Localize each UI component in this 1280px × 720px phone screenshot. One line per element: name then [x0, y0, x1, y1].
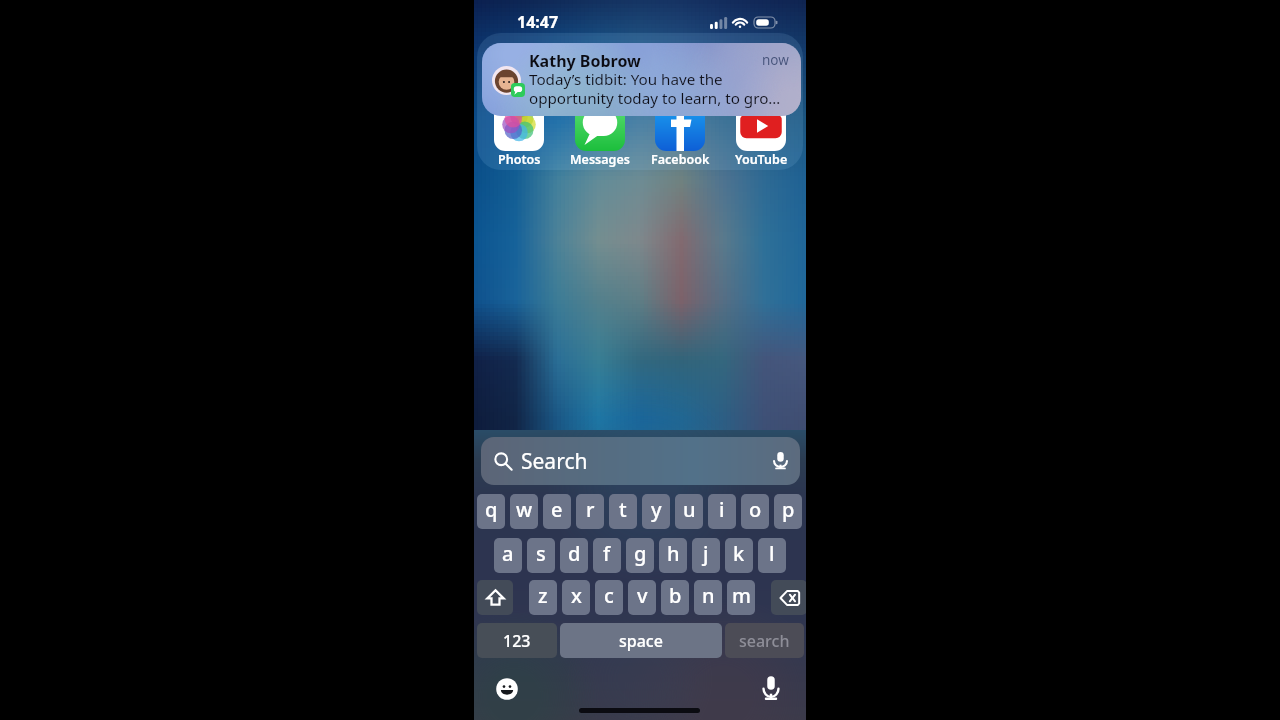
staticText: f: [603, 540, 611, 567]
staticText: now: [762, 51, 789, 69]
button[interactable]: z: [529, 580, 557, 615]
button[interactable]: e: [543, 494, 571, 529]
button[interactable]: r: [576, 494, 604, 529]
button[interactable]: search: [725, 623, 804, 658]
staticText: e: [551, 496, 563, 523]
staticText: 123: [503, 630, 531, 652]
staticText: m: [732, 582, 751, 609]
button[interactable]: b: [661, 580, 689, 615]
staticText: Kathy Bobrow: [529, 50, 641, 72]
staticText: space: [619, 630, 663, 652]
staticText: g: [634, 540, 647, 567]
staticText: c: [604, 582, 614, 609]
button[interactable]: Photos: [486, 101, 552, 168]
staticText: Today’s tidbit: You have the opportunity…: [529, 69, 781, 108]
button[interactable]: g: [626, 538, 654, 573]
staticText: n: [702, 582, 715, 609]
button[interactable]: Dictation: [760, 675, 782, 701]
button[interactable]: 123: [477, 623, 557, 658]
button[interactable]: d: [560, 538, 588, 573]
button[interactable]: o: [741, 494, 769, 529]
button[interactable]: p: [774, 494, 802, 529]
staticText: y: [651, 496, 662, 523]
button[interactable]: q: [477, 494, 505, 529]
staticText: 14:47: [517, 11, 559, 33]
staticText: YouTube: [735, 151, 788, 168]
staticText: u: [683, 496, 696, 523]
button[interactable]: u: [675, 494, 703, 529]
staticText: v: [637, 582, 648, 609]
staticText: l: [769, 540, 775, 567]
button[interactable]: YouTube: [728, 101, 794, 168]
button[interactable]: Messages: [567, 101, 633, 168]
button[interactable]: k: [725, 538, 753, 573]
button[interactable]: m: [727, 580, 755, 615]
staticText: d: [568, 540, 581, 567]
staticText: j: [703, 540, 709, 567]
button[interactable]: Search: [481, 437, 800, 485]
staticText: x: [571, 582, 582, 609]
staticText: o: [749, 496, 762, 523]
button[interactable]: i: [708, 494, 736, 529]
staticText: s: [536, 540, 546, 567]
button[interactable]: h: [659, 538, 687, 573]
staticText: i: [719, 496, 725, 523]
button[interactable]: n: [694, 580, 722, 615]
button[interactable]: Kathy Bobrow: [482, 43, 801, 116]
button[interactable]: v: [628, 580, 656, 615]
staticText: Facebook: [651, 151, 710, 168]
staticText: k: [733, 540, 745, 567]
staticText: r: [586, 496, 595, 523]
staticText: search: [739, 630, 790, 652]
button[interactable]: l: [758, 538, 786, 573]
button[interactable]: a: [494, 538, 522, 573]
staticText: z: [538, 582, 548, 609]
staticText: w: [516, 496, 533, 523]
button[interactable]: Backspace: [771, 580, 806, 615]
staticText: q: [485, 496, 498, 523]
staticText: p: [782, 496, 795, 523]
staticText: h: [667, 540, 680, 567]
button[interactable]: y: [642, 494, 670, 529]
button[interactable]: Dictate: [771, 451, 790, 470]
button[interactable]: s: [527, 538, 555, 573]
button[interactable]: Shift: [477, 580, 513, 615]
button[interactable]: w: [510, 494, 538, 529]
staticText: b: [669, 582, 682, 609]
staticText: Photos: [498, 151, 541, 168]
button[interactable]: x: [562, 580, 590, 615]
button[interactable]: f: [593, 538, 621, 573]
staticText: t: [619, 496, 627, 523]
button[interactable]: c: [595, 580, 623, 615]
staticText: a: [502, 540, 514, 567]
button[interactable]: j: [692, 538, 720, 573]
staticText: Search: [521, 447, 588, 476]
button[interactable]: Facebook: [647, 101, 713, 168]
button[interactable]: Emoji keyboard: [495, 677, 519, 701]
staticText: Messages: [570, 151, 630, 168]
button[interactable]: space: [560, 623, 722, 658]
button[interactable]: t: [609, 494, 637, 529]
